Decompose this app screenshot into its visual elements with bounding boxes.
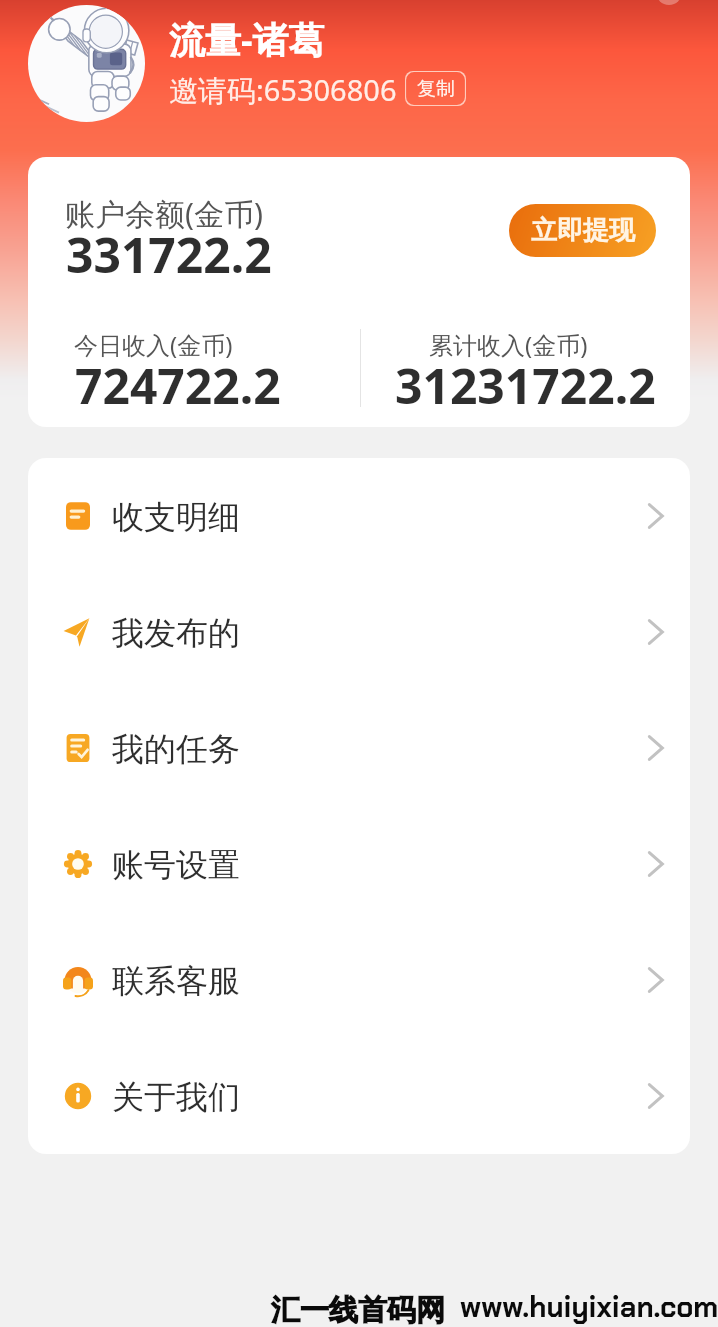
staticText: 账号设置 — [112, 845, 240, 885]
button[interactable]: 联系客服 — [28, 922, 690, 1038]
button[interactable]: 收支明细 — [28, 458, 690, 574]
staticText: 联系客服 — [112, 961, 240, 1001]
button[interactable]: 我的任务 — [28, 690, 690, 806]
button[interactable]: Profile avatar — [28, 5, 145, 122]
staticText: www.huiyixian.com — [460, 1288, 718, 1326]
staticText: 收支明细 — [112, 497, 240, 537]
button[interactable]: 立即提现 — [509, 204, 656, 257]
staticText: 账户余额(金币) — [65, 193, 263, 234]
staticText: 复制 — [417, 77, 455, 101]
staticText: 流量-诸葛 — [169, 15, 325, 64]
staticText: 立即提现 — [531, 214, 635, 247]
button[interactable]: 关于我们 — [28, 1038, 690, 1154]
staticText: 331722.2 — [66, 222, 272, 287]
staticText: 汇一线首码网 — [271, 1292, 445, 1327]
staticText: 31231722.2 — [395, 353, 656, 418]
staticText: 724722.2 — [75, 353, 281, 418]
button[interactable]: 账号设置 — [28, 806, 690, 922]
staticText: 今日收入(金币) — [74, 328, 233, 361]
staticText: 我的任务 — [112, 729, 240, 769]
button[interactable]: 复制 — [405, 71, 466, 106]
staticText: 邀请码:65306806 — [169, 70, 397, 110]
staticText: 我发布的 — [112, 613, 240, 653]
staticText: 累计收入(金币) — [429, 328, 588, 361]
button[interactable]: 我发布的 — [28, 574, 690, 690]
staticText: 关于我们 — [112, 1077, 240, 1117]
